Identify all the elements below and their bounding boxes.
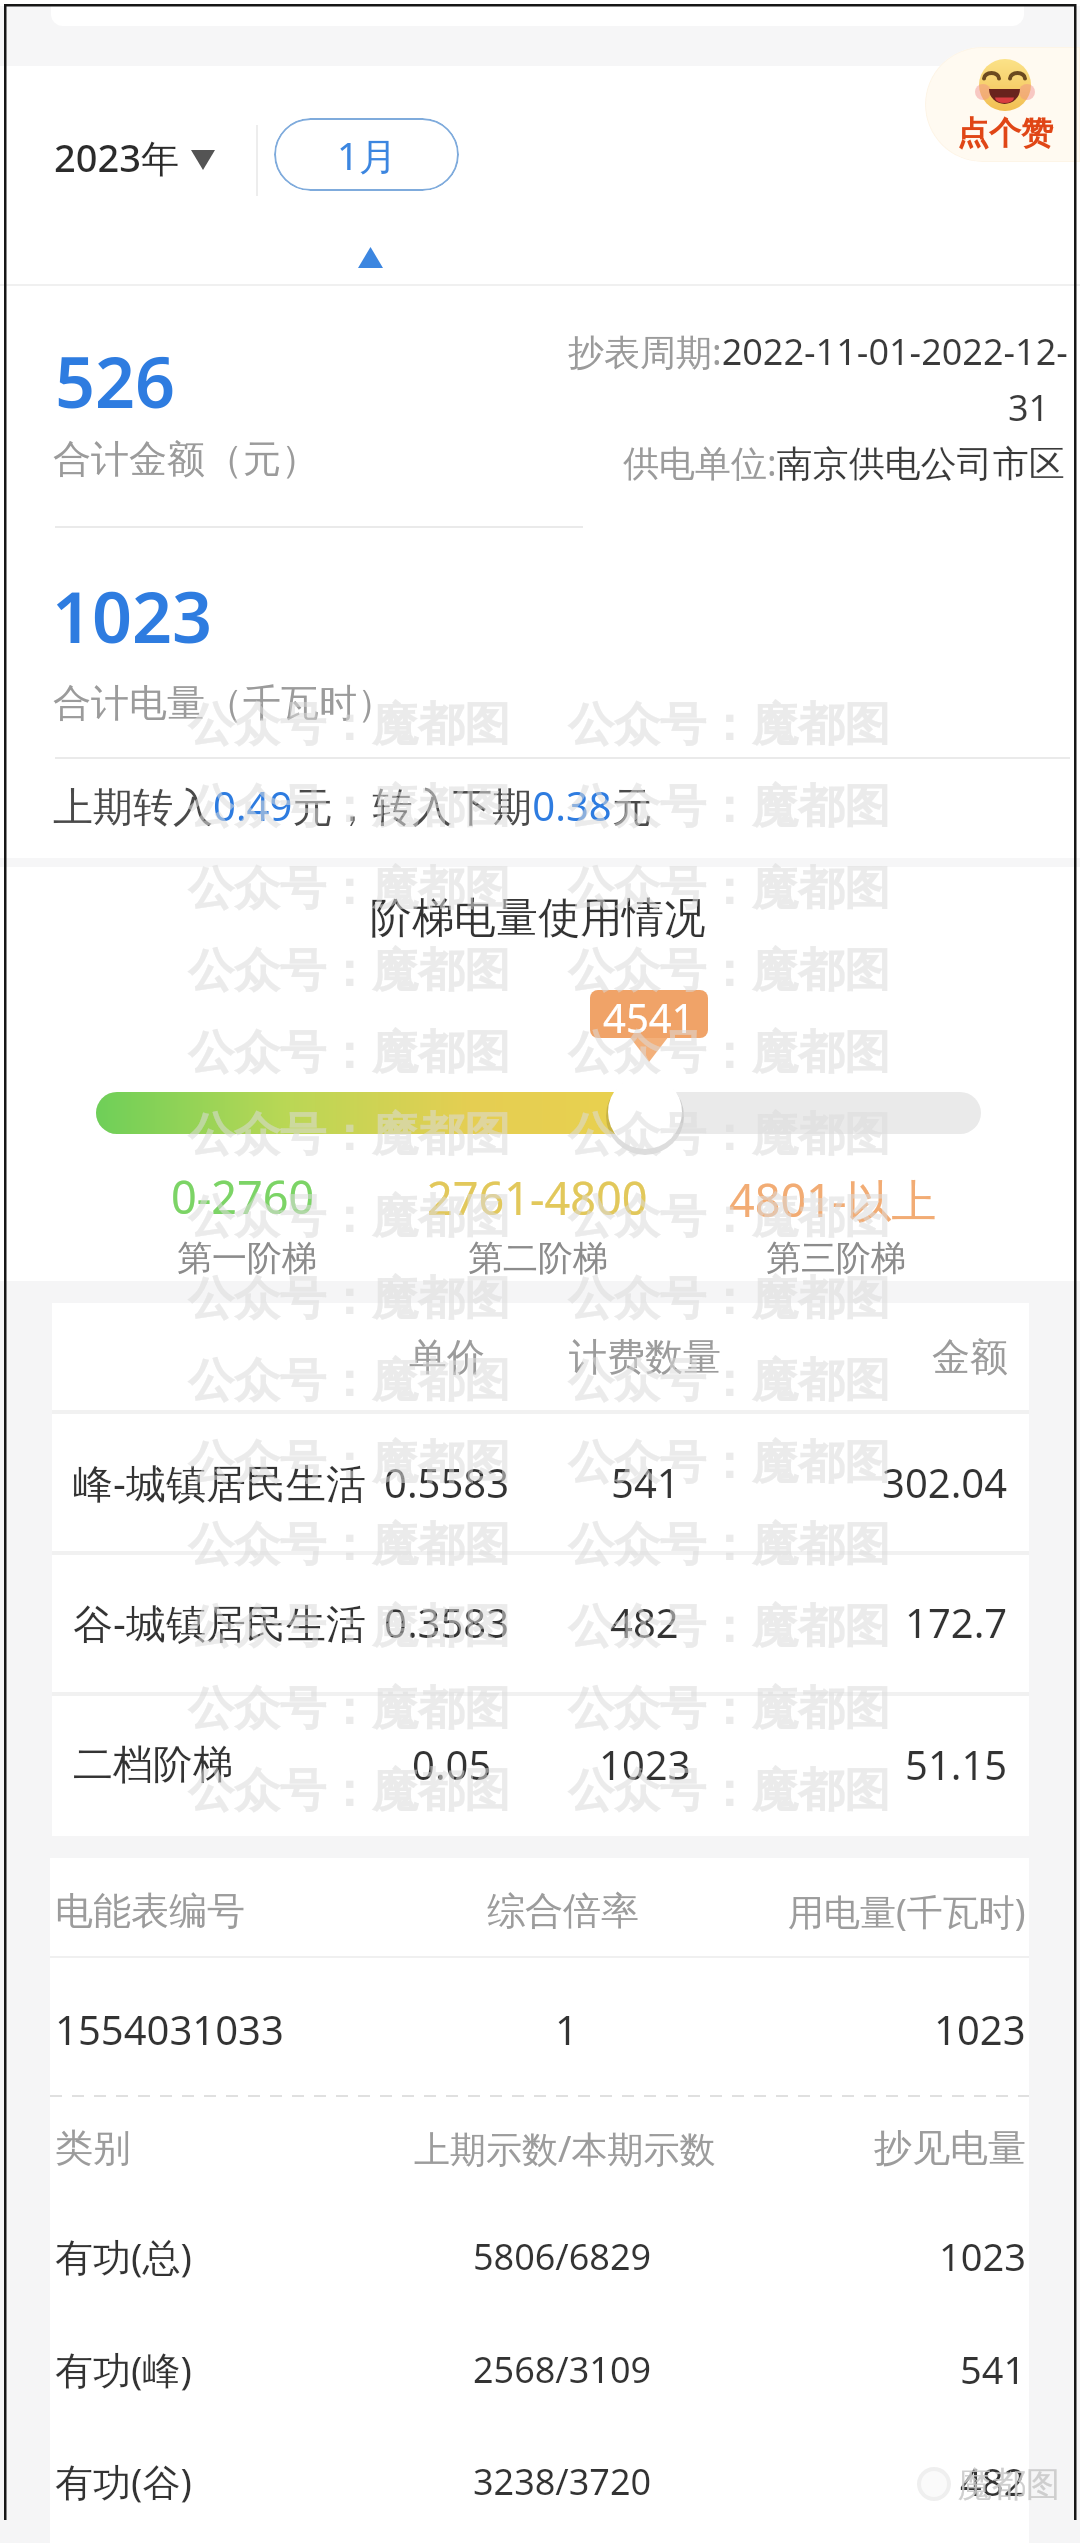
- staticText: 第一阶梯: [177, 1236, 317, 1280]
- staticText: 公众号：魔都图: [568, 1270, 890, 1328]
- staticText: 有功(峰): [55, 2343, 192, 2395]
- staticText: 公众号：魔都图: [568, 1024, 890, 1082]
- staticText: 302.04: [882, 1455, 1008, 1509]
- staticText: 电能表编号: [55, 1887, 245, 1935]
- staticText: 4801-以上: [729, 1169, 937, 1230]
- staticText: 0-2760: [171, 1166, 315, 1227]
- staticText: 金额: [932, 1333, 1008, 1381]
- staticText: 公众号：魔都图: [568, 1352, 890, 1410]
- staticText: 172.7: [905, 1595, 1008, 1649]
- staticText: 3238/3720: [473, 2457, 652, 2506]
- staticText: 魔都图: [958, 2463, 1060, 2506]
- staticText: 上期转入0.49元，转入下期0.38元: [53, 778, 652, 833]
- staticText: 公众号：魔都图: [568, 1434, 890, 1492]
- staticText: 1023: [52, 568, 213, 663]
- staticText: 计费数量: [569, 1333, 721, 1381]
- staticText: 综合倍率: [487, 1887, 639, 1935]
- staticText: 2568/3109: [473, 2345, 652, 2394]
- staticText: 公众号：魔都图: [188, 1434, 510, 1492]
- staticText: 2023年: [54, 131, 179, 183]
- staticText: 2761-4800: [427, 1167, 648, 1228]
- staticText: 供电单位:南京供电公司市区: [623, 438, 1065, 487]
- staticText: 公众号：魔都图: [188, 1352, 510, 1410]
- staticText: 526: [55, 333, 176, 428]
- staticText: 公众号：魔都图: [188, 1024, 510, 1082]
- staticText: 482: [610, 1595, 679, 1649]
- staticText: 482: [960, 2455, 1026, 2507]
- staticText: 1月: [337, 129, 397, 181]
- staticText: 公众号：魔都图: [568, 1762, 890, 1820]
- staticText: 点个赞: [957, 113, 1053, 153]
- staticText: 二档阶梯: [73, 1739, 233, 1789]
- staticText: 4541: [603, 990, 695, 1038]
- staticText: 1554031033: [55, 2002, 284, 2056]
- staticText: 谷-城镇居民生活: [73, 1595, 366, 1650]
- staticText: 公众号：魔都图: [188, 1270, 510, 1328]
- staticText: 0.3583: [384, 1595, 510, 1649]
- staticText: 1023: [934, 2002, 1026, 2056]
- staticText: 合计金额（元）: [53, 435, 319, 483]
- button[interactable]: [40, 112, 270, 202]
- staticText: 公众号：魔都图: [568, 1680, 890, 1738]
- staticText: 5806/6829: [473, 2232, 652, 2281]
- staticText: 公众号：魔都图: [568, 1188, 890, 1246]
- button[interactable]: 1月: [274, 118, 459, 191]
- staticText: 51.15: [905, 1737, 1008, 1791]
- staticText: 公众号：魔都图: [568, 1598, 890, 1656]
- staticText: 第二阶梯: [468, 1236, 608, 1280]
- staticText: 公众号：魔都图: [568, 696, 890, 754]
- staticText: 1: [555, 2002, 578, 2056]
- staticText: 合计电量（千瓦时）: [53, 679, 395, 727]
- staticText: 公众号：魔都图: [188, 1516, 510, 1574]
- staticText: 公众号：魔都图: [568, 942, 890, 1000]
- staticText: 第三阶梯: [766, 1236, 906, 1280]
- staticText: 公众号：魔都图: [568, 860, 890, 918]
- staticText: 31: [1008, 383, 1050, 432]
- staticText: 541: [611, 1455, 680, 1509]
- staticText: 阶梯电量使用情况: [370, 892, 706, 945]
- staticText: 有功(总): [55, 2230, 192, 2282]
- staticText: 公众号：魔都图: [188, 1762, 510, 1820]
- staticText: 单价: [409, 1333, 485, 1381]
- staticText: 541: [960, 2343, 1026, 2395]
- staticText: 0.05: [412, 1737, 492, 1791]
- staticText: 公众号：魔都图: [188, 778, 510, 836]
- staticText: 类别: [55, 2124, 131, 2172]
- staticText: 公众号：魔都图: [568, 778, 890, 836]
- staticText: 上期示数/本期示数: [414, 2124, 716, 2173]
- staticText: 有功(谷): [55, 2455, 192, 2507]
- staticText: 用电量(千瓦时): [788, 1887, 1026, 1936]
- staticText: 抄表周期:2022-11-01-2022-12-: [568, 327, 1068, 376]
- button[interactable]: [925, 47, 1080, 162]
- staticText: 公众号：魔都图: [188, 696, 510, 754]
- staticText: 1023: [939, 2230, 1026, 2282]
- staticText: 抄见电量: [874, 2124, 1026, 2172]
- staticText: 公众号：魔都图: [188, 1680, 510, 1738]
- staticText: 公众号：魔都图: [568, 1516, 890, 1574]
- staticText: 公众号：魔都图: [188, 860, 510, 918]
- staticText: 峰-城镇居民生活: [73, 1455, 366, 1510]
- staticText: 1023: [599, 1737, 691, 1791]
- staticText: 公众号：魔都图: [188, 1106, 510, 1164]
- staticText: 公众号：魔都图: [188, 1188, 510, 1246]
- staticText: 公众号：魔都图: [188, 942, 510, 1000]
- staticText: 公众号：魔都图: [188, 1598, 510, 1656]
- staticText: 0.5583: [384, 1455, 510, 1509]
- staticText: 公众号：魔都图: [568, 1106, 890, 1164]
